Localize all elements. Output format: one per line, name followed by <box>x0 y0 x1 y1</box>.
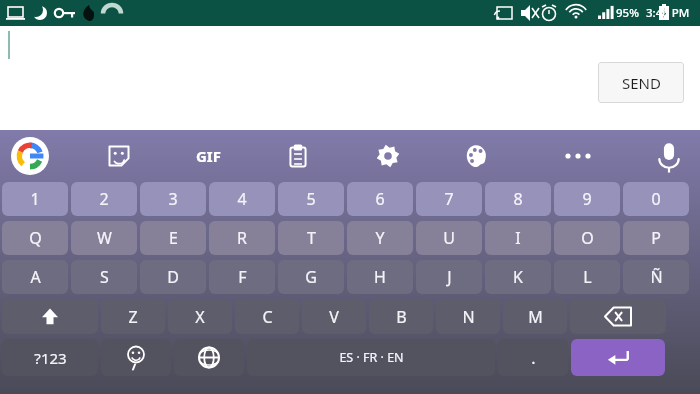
staticText: T <box>307 227 316 249</box>
staticText: 0 <box>651 188 661 210</box>
button[interactable]: I <box>485 221 551 255</box>
button[interactable]: J <box>416 260 482 294</box>
staticText: I <box>515 227 521 249</box>
staticText: A <box>30 266 41 288</box>
button[interactable]: Stickers <box>93 130 145 182</box>
staticText: U <box>443 227 455 249</box>
button[interactable]: Settings <box>362 130 414 182</box>
staticText: Q <box>29 227 42 249</box>
button[interactable]: D <box>140 260 206 294</box>
staticText: V <box>329 306 339 328</box>
button[interactable]: 1 <box>2 182 68 216</box>
button[interactable]: Y <box>347 221 413 255</box>
staticText: N <box>462 306 475 328</box>
button[interactable]: 7 <box>416 182 482 216</box>
staticText: . <box>531 347 536 369</box>
staticText: B <box>396 306 407 328</box>
button[interactable]: F <box>209 260 275 294</box>
staticText: R <box>237 227 247 249</box>
button[interactable]: S <box>71 260 137 294</box>
staticText: 3:46 PM <box>646 5 690 21</box>
button[interactable]: ?123 <box>2 339 98 376</box>
staticText: P <box>651 227 661 249</box>
staticText: K <box>513 266 523 288</box>
staticText: W <box>97 227 112 249</box>
button[interactable]: W <box>71 221 137 255</box>
button[interactable]: . <box>498 339 568 376</box>
button[interactable]: Backspace <box>570 299 666 334</box>
button[interactable]: 2 <box>71 182 137 216</box>
staticText: 1 <box>30 188 40 210</box>
button[interactable]: 0 <box>623 182 689 216</box>
staticText: F <box>238 266 247 288</box>
staticText: 7 <box>444 188 454 210</box>
button[interactable]: Enter <box>571 339 665 376</box>
button[interactable]: More options <box>552 130 604 182</box>
staticText: J <box>447 266 452 288</box>
button[interactable]: L <box>554 260 620 294</box>
button[interactable]: Google search <box>4 130 56 182</box>
button[interactable]: SEND <box>598 62 684 103</box>
staticText: L <box>583 266 592 288</box>
staticText: D <box>167 266 179 288</box>
staticText: 95% <box>616 5 639 21</box>
staticText: ?123 <box>34 348 67 368</box>
staticText: 8 <box>513 188 523 210</box>
button[interactable]: H <box>347 260 413 294</box>
button[interactable]: K <box>485 260 551 294</box>
button[interactable]: 6 <box>347 182 413 216</box>
button[interactable]: A <box>2 260 68 294</box>
staticText: ES · FR · EN <box>339 349 404 366</box>
button[interactable]: Themes <box>451 130 503 182</box>
staticText: GIF <box>196 146 221 166</box>
button[interactable]: V <box>302 299 366 334</box>
staticText: 5 <box>306 188 316 210</box>
staticText: 2 <box>99 188 109 210</box>
button[interactable]: Voice input <box>643 130 695 182</box>
button[interactable]: P <box>623 221 689 255</box>
staticText: 9 <box>582 188 592 210</box>
button[interactable]: 4 <box>209 182 275 216</box>
button[interactable]: B <box>369 299 433 334</box>
staticText: S <box>100 266 109 288</box>
button[interactable]: GIF <box>182 130 234 182</box>
button[interactable]: ES · FR · EN <box>247 339 495 376</box>
button[interactable]: Q <box>2 221 68 255</box>
staticText: SEND <box>622 73 661 93</box>
button[interactable]: X <box>168 299 232 334</box>
button[interactable]: G <box>278 260 344 294</box>
button[interactable]: Shift <box>2 299 98 334</box>
staticText: E <box>169 227 178 249</box>
staticText: M <box>528 306 543 328</box>
staticText: H <box>374 266 386 288</box>
staticText: C <box>262 306 273 328</box>
button[interactable]: 3 <box>140 182 206 216</box>
staticText: G <box>305 266 317 288</box>
button[interactable]: O <box>554 221 620 255</box>
button[interactable]: 5 <box>278 182 344 216</box>
button[interactable]: C <box>235 299 299 334</box>
staticText: O <box>581 227 594 249</box>
button[interactable]: 9 <box>554 182 620 216</box>
button[interactable]: R <box>209 221 275 255</box>
button[interactable]: Change language <box>174 339 244 376</box>
button[interactable]: Emoji <box>101 339 171 376</box>
staticText: X <box>195 306 205 328</box>
button[interactable]: T <box>278 221 344 255</box>
staticText: Ñ <box>650 266 663 288</box>
button[interactable]: E <box>140 221 206 255</box>
staticText: Y <box>375 227 385 249</box>
button[interactable]: M <box>503 299 567 334</box>
staticText: 3 <box>168 188 178 210</box>
button[interactable]: Ñ <box>623 260 689 294</box>
staticText: 6 <box>375 188 385 210</box>
staticText: 4 <box>237 188 247 210</box>
button[interactable]: N <box>436 299 500 334</box>
button[interactable]: Clipboard <box>272 130 324 182</box>
button[interactable]: Z <box>101 299 165 334</box>
button[interactable]: U <box>416 221 482 255</box>
staticText: Z <box>128 306 138 328</box>
button[interactable]: 8 <box>485 182 551 216</box>
